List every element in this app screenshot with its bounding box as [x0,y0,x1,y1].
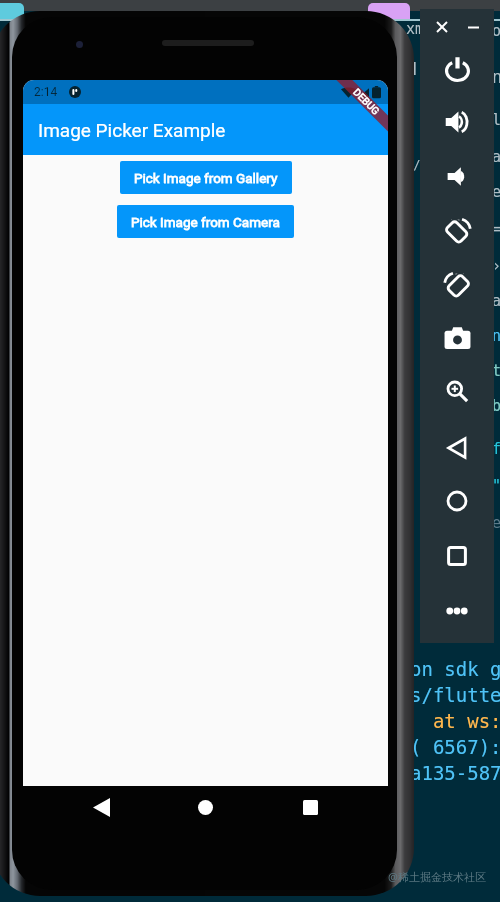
staticText: on sdk gp [410,658,500,680]
button[interactable]: Rotate left [439,212,475,248]
staticText: n [492,67,500,87]
staticText: " [492,477,500,494]
staticText: l [492,111,500,128]
staticText: t [492,362,500,379]
button[interactable]: Recents [291,788,329,826]
staticText: @稀土掘金技术社区 [388,869,486,884]
staticText: i [406,214,414,228]
staticText: f [492,440,500,457]
button[interactable]: Volume down [439,158,475,194]
staticText: 1 [406,278,414,292]
button[interactable]: Volume up [439,104,475,140]
staticText: e [492,514,500,531]
staticText: DEBUG [350,86,381,117]
staticText: Pick Image from Camera [131,214,280,230]
button[interactable]: Back [439,430,475,466]
staticText: b [492,397,500,414]
button[interactable]: Home [439,483,475,519]
button[interactable]: Power [439,51,475,87]
button[interactable]: Home [186,788,224,826]
button[interactable]: More [439,593,475,629]
staticText: a/ [406,158,421,172]
button[interactable]: Pick Image from Gallery [120,161,292,194]
button[interactable]: Zoom [439,373,475,409]
staticText: xm [406,20,425,37]
button[interactable]: Pick Image from Camera [117,205,294,238]
staticText: s/flutter [410,684,500,706]
staticText: Pick Image from Gallery [134,170,278,186]
staticText: 1 [406,306,414,320]
staticText: n [492,327,500,344]
staticText: › [492,257,500,274]
staticText: at ws:// [410,710,500,732]
button[interactable]: Rotate right [439,266,475,302]
staticText: = [492,220,500,237]
button[interactable]: Screenshot [439,320,475,356]
staticText: e [492,183,500,200]
button[interactable]: Close [432,17,452,37]
staticText: a135-587e [410,762,500,784]
staticText: Image Picker Example [38,119,226,141]
button[interactable]: Minimize [463,17,483,37]
staticText: 2:14 [34,85,58,99]
staticText: a [492,148,500,165]
button[interactable]: Overview [439,538,475,574]
staticText: ( 6567): [410,736,500,758]
staticText: ' [406,186,414,200]
staticText: i [406,128,414,142]
button[interactable]: Back [82,788,120,826]
staticText: ~ [406,97,414,112]
staticText: o [492,22,500,39]
staticText: M [406,59,417,79]
staticText: a [492,292,500,309]
staticText: 1 [406,334,414,348]
